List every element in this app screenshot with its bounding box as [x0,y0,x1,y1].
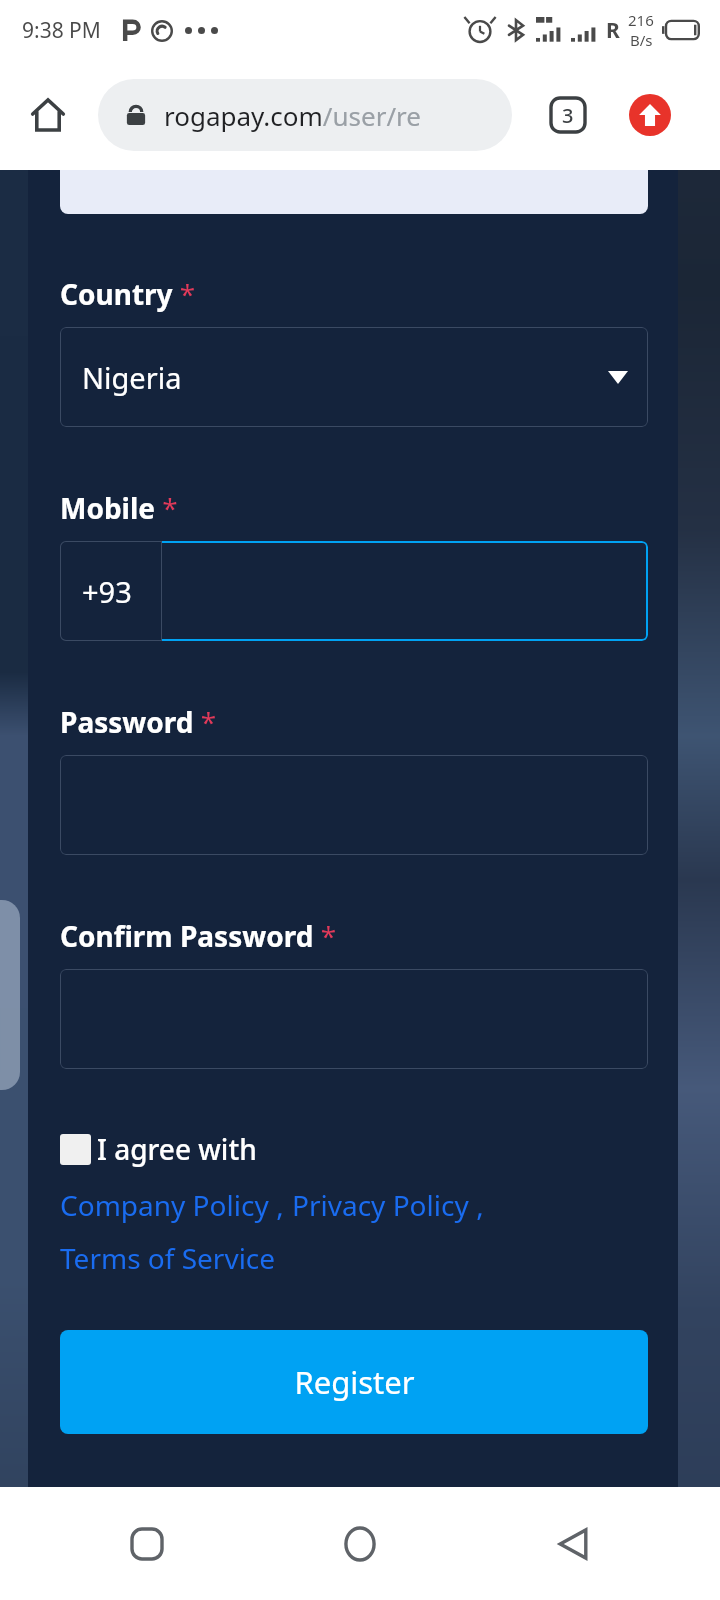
staticText: , [469,1186,484,1224]
staticText: Register [294,1361,415,1403]
button[interactable]: rogapay.com/user/re [98,79,512,151]
staticText: , [269,1186,292,1224]
button[interactable]: Update available [619,84,681,146]
button[interactable]: Terms of Service [60,1239,276,1277]
button[interactable]: +93 [60,541,162,641]
staticText: Nigeria [82,358,182,397]
button[interactable]: Home [323,1507,397,1581]
button[interactable] [60,969,648,1069]
staticText: Mobile * [60,489,178,527]
button[interactable]: Nigeria [60,327,648,427]
button[interactable] [60,755,648,855]
button[interactable]: Tabs: 3 open [537,84,599,146]
staticText: 216 [628,10,654,30]
button[interactable] [60,152,648,214]
button[interactable]: Home [18,85,78,145]
staticText: Password * [60,703,217,741]
button[interactable]: I agree with [60,1125,257,1173]
button[interactable]: Recent apps [110,1507,184,1581]
staticText: 3 [562,102,574,129]
staticText: Country * [60,275,196,313]
staticText: Confirm Password * [60,917,337,955]
staticText: +93 [82,572,132,611]
staticText: R [606,16,620,45]
button[interactable]: Register [60,1330,648,1434]
staticText: B/s [630,30,653,50]
button[interactable]: Back [536,1507,610,1581]
button[interactable] [60,541,648,641]
button[interactable]: Privacy Policy [292,1186,469,1224]
staticText: 9:38 PM [22,16,101,45]
button[interactable]: Company Policy [60,1186,269,1224]
staticText: rogapay.com/user/re [164,98,421,133]
staticText: I agree with [97,1130,257,1168]
